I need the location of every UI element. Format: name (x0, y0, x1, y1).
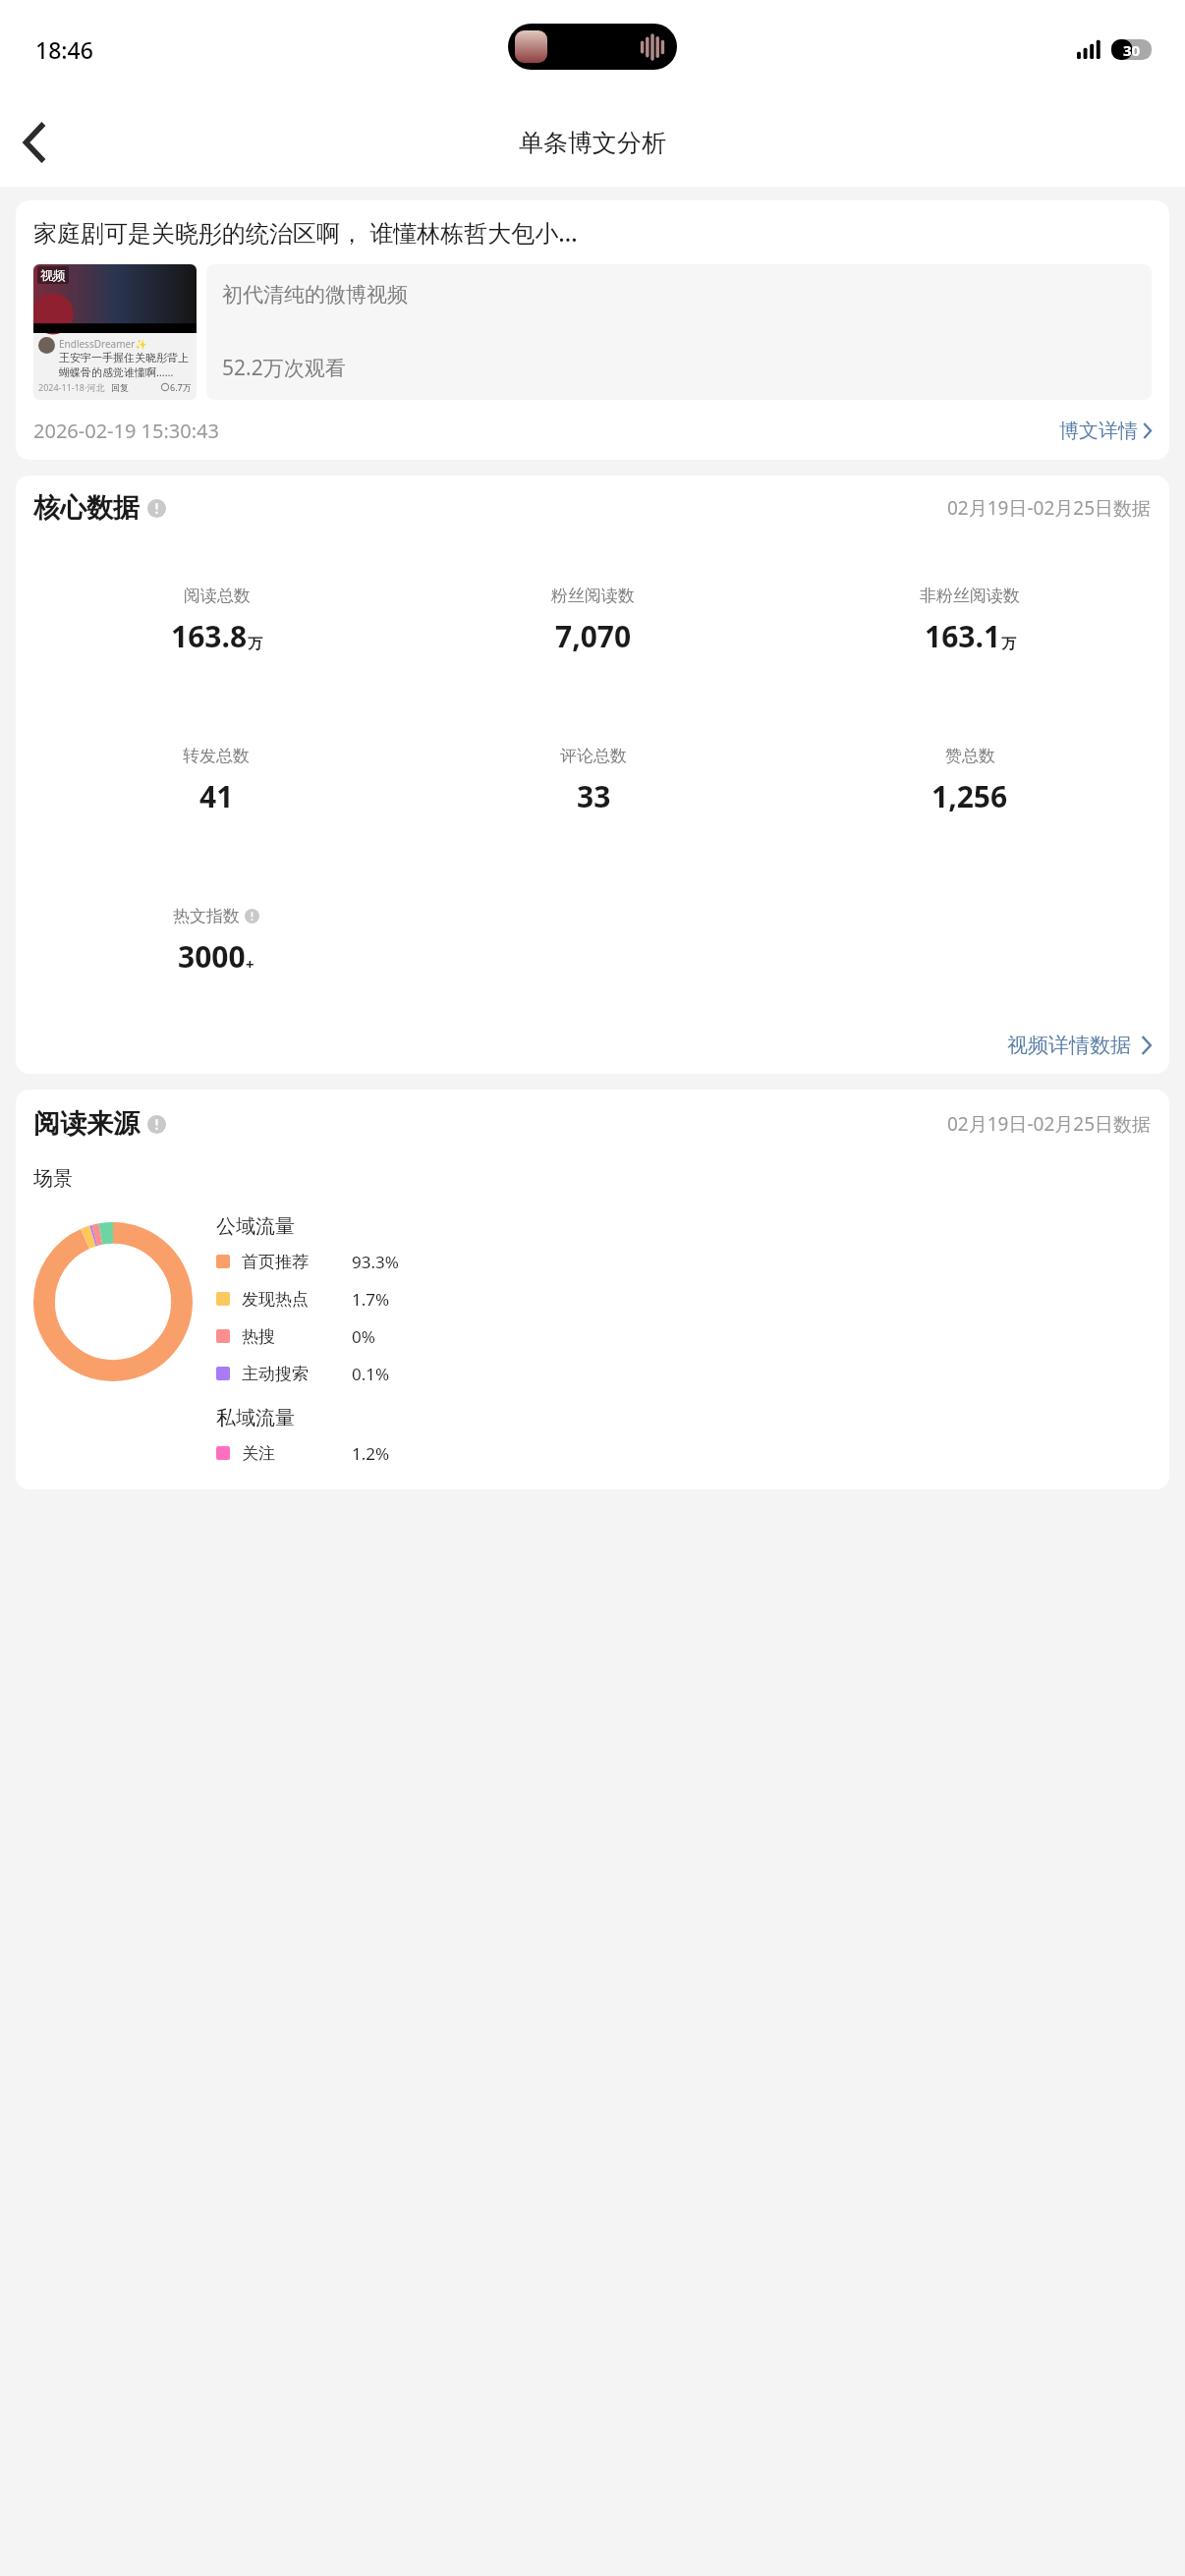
staticText: 场景 (33, 1166, 73, 1191)
staticText: 2024-11-18·河北 (38, 381, 105, 393)
staticText: 02月19日-02月25日数据 (947, 495, 1152, 521)
button[interactable]: 赞总数 (785, 704, 1154, 857)
staticText: + (246, 954, 254, 974)
button[interactable]: 热搜 (216, 1317, 1152, 1355)
staticText: 核心数据 (33, 491, 140, 525)
staticText: 6.7万 (170, 381, 192, 393)
button[interactable]: 家庭剧可是关晓彤的统治区啊， 谁懂林栋哲大包小… (16, 200, 1169, 460)
staticText: 3000 (178, 936, 246, 977)
button[interactable]: 主动搜索 (216, 1355, 1152, 1392)
staticText: 视频详情数据 (1007, 1033, 1131, 1058)
button[interactable]: 发现热点 (216, 1280, 1152, 1317)
button[interactable]: 粉丝阅读数 (409, 544, 777, 697)
staticText: 阅读来源 (33, 1107, 140, 1141)
staticText: 初代清纯的微博视频 (222, 282, 408, 308)
staticText: 93.3% (352, 1251, 399, 1273)
staticText: 33 (577, 776, 611, 816)
staticText: 18:46 (35, 34, 93, 65)
staticText: 王安宇一手握住关晓彤背上蝴蝶骨的感觉谁懂啊…… (59, 351, 193, 379)
staticText: 1.7% (352, 1288, 390, 1311)
staticText: 163.1 (925, 616, 1001, 656)
staticText: 阅读总数 (184, 586, 251, 606)
staticText: 单条博文分析 (519, 128, 666, 158)
button[interactable]: 视频详情数据 (1007, 1033, 1157, 1058)
staticText: 万 (248, 635, 262, 653)
staticText: 非粉丝阅读数 (920, 586, 1020, 606)
staticText: EndlessDreamer✨ (59, 337, 147, 351)
staticText: 视频 (40, 267, 66, 283)
staticText: 公域流量 (216, 1214, 295, 1239)
button[interactable]: Back (0, 107, 71, 178)
staticText: 热搜 (242, 1326, 352, 1347)
staticText: 30 (1123, 40, 1141, 60)
button[interactable]: 阅读总数 (31, 544, 401, 697)
staticText: 1,256 (931, 776, 1008, 816)
staticText: 52.2万次观看 (222, 354, 346, 382)
staticText: 主动搜索 (242, 1364, 352, 1384)
button[interactable]: 关注 (216, 1434, 1152, 1472)
button[interactable]: 首页推荐 (216, 1243, 1152, 1280)
button[interactable]: 转发总数 (31, 704, 401, 857)
staticText: 热文指数 (173, 906, 240, 926)
staticText: 关注 (242, 1443, 352, 1464)
staticText: 万 (1001, 635, 1016, 653)
staticText: 163.8 (171, 616, 248, 656)
staticText: 回复 (111, 382, 129, 393)
staticText: 1.2% (352, 1442, 390, 1465)
staticText: 博文详情 (1059, 419, 1138, 443)
staticText: 41 (199, 776, 234, 816)
button[interactable]: 评论总数 (409, 704, 777, 857)
staticText: 7,070 (555, 616, 632, 656)
staticText: 赞总数 (945, 746, 995, 766)
staticText: 评论总数 (560, 746, 627, 766)
staticText: 2026-02-19 15:30:43 (33, 418, 219, 444)
staticText: 首页推荐 (242, 1252, 352, 1272)
staticText: 0% (352, 1325, 375, 1348)
staticText: 0.1% (352, 1363, 390, 1385)
staticText: 发现热点 (242, 1289, 352, 1310)
button[interactable]: 博文详情 (1059, 419, 1152, 443)
staticText: 家庭剧可是关晓彤的统治区啊， 谁懂林栋哲大包小… (33, 216, 578, 249)
staticText: 02月19日-02月25日数据 (947, 1111, 1152, 1137)
staticText: 粉丝阅读数 (551, 586, 635, 606)
button[interactable]: 非粉丝阅读数 (785, 544, 1154, 697)
staticText: 私域流量 (216, 1406, 295, 1430)
staticText: 转发总数 (183, 746, 250, 766)
button[interactable]: 热文指数 (31, 865, 400, 1017)
